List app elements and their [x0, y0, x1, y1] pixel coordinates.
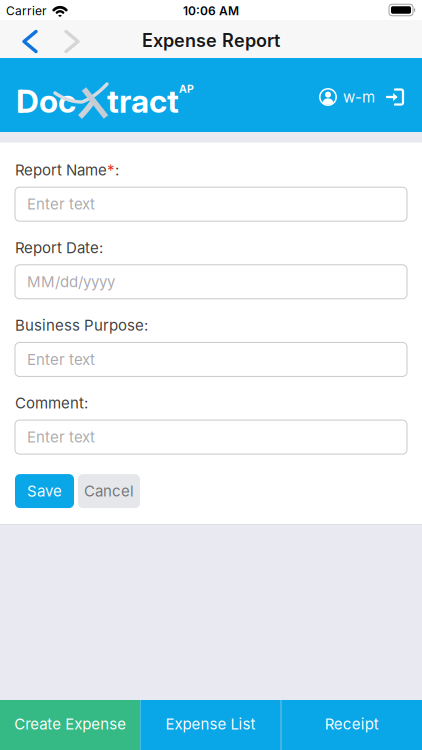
staticText: Cancel [84, 482, 134, 500]
button[interactable]: Account w-m [319, 88, 375, 106]
staticText: Doc [16, 82, 76, 120]
staticText: AP [179, 83, 194, 95]
button[interactable]: Report Name [15, 187, 407, 221]
staticText: : [99, 239, 103, 257]
staticText: 10:06 AM [183, 4, 239, 18]
staticText: Save [27, 482, 62, 500]
staticText: Enter text [27, 350, 95, 368]
staticText: Business Purpose [15, 316, 144, 334]
button[interactable]: Receipt [282, 700, 422, 750]
staticText: Carrier [6, 4, 47, 18]
staticText: Enter text [27, 195, 95, 213]
staticText: Create Expense [14, 715, 126, 733]
staticText: Report Name [15, 161, 107, 179]
button[interactable]: Comment [15, 420, 407, 454]
staticText: w-m [343, 88, 375, 106]
staticText: MM/dd/yyyy [27, 273, 115, 291]
staticText: Expense Report [142, 30, 280, 51]
button[interactable]: Create Expense [0, 700, 140, 750]
staticText: tract [107, 82, 179, 120]
button[interactable]: Sign out [375, 88, 404, 105]
staticText: : [144, 316, 148, 334]
staticText: Receipt [325, 715, 379, 733]
button[interactable]: Save [15, 474, 74, 508]
button[interactable]: Report Date [15, 265, 407, 299]
button[interactable]: Business Purpose [15, 342, 407, 376]
staticText: * [107, 161, 115, 179]
button[interactable]: Back [22, 24, 38, 58]
staticText: : [84, 394, 88, 412]
button[interactable]: Forward [64, 24, 80, 58]
button[interactable]: Expense List [140, 700, 281, 750]
staticText: Expense List [165, 715, 255, 733]
staticText: Report Date [15, 239, 99, 257]
staticText: : [115, 161, 119, 179]
button[interactable]: Cancel [78, 474, 140, 508]
staticText: Enter text [27, 428, 95, 446]
staticText: Comment [15, 394, 84, 412]
